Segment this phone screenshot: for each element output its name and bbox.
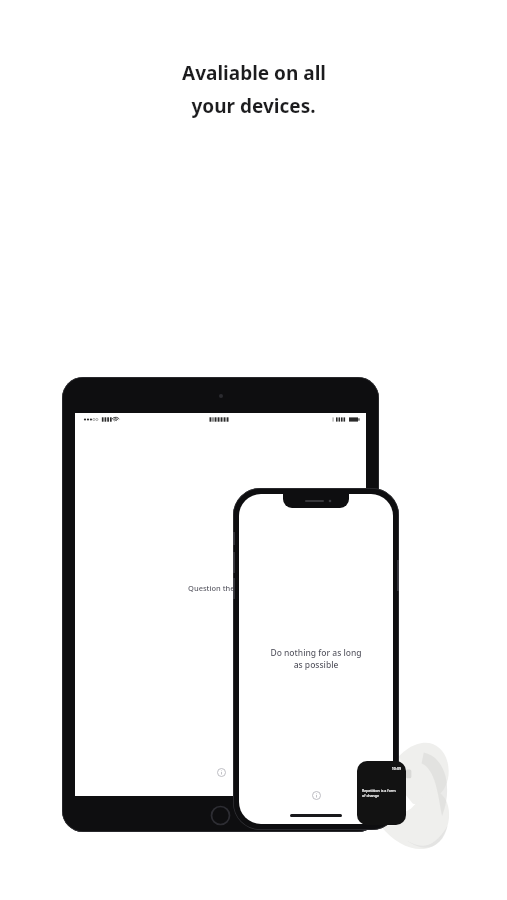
- button[interactable]: Home button: [210, 805, 231, 826]
- button[interactable]: Tablet device preview: [62, 377, 379, 832]
- staticText: Question the here: [188, 583, 253, 593]
- button[interactable]: Phone device preview: [233, 488, 399, 830]
- button[interactable]: Smart watch preview: [346, 733, 454, 855]
- staticText: 10:09: [391, 766, 401, 771]
- button[interactable]: Info: [309, 788, 323, 802]
- staticText: Repetition is a form of change: [362, 788, 396, 798]
- button[interactable]: Watch face quote: [357, 761, 406, 825]
- staticText: Avaliable on all: [182, 60, 326, 86]
- button[interactable]: Info: [214, 765, 228, 779]
- staticText: your devices.: [191, 93, 316, 119]
- staticText: Do nothing for as long as possible: [270, 647, 362, 671]
